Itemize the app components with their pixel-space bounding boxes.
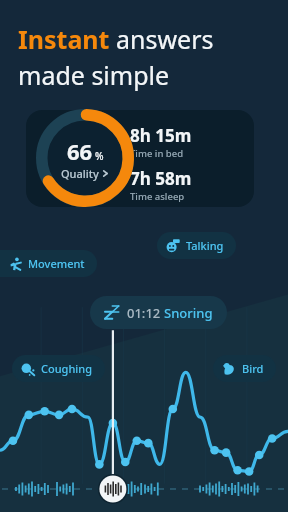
button[interactable]: Coughing (12, 355, 105, 382)
button[interactable]: Sleep quality 66 percent (33, 106, 137, 210)
staticText: Time asleep (130, 190, 185, 203)
staticText: Talking (186, 238, 224, 253)
button[interactable]: Movement (0, 250, 97, 277)
staticText: Bird (242, 361, 264, 376)
staticText: Instant (18, 22, 116, 56)
staticText: 8h 15m (130, 124, 192, 147)
staticText: Time in bed (130, 147, 184, 160)
staticText: % (95, 149, 104, 163)
staticText: Coughing (41, 361, 93, 376)
button[interactable]: Talking (157, 232, 236, 259)
button[interactable]: 01:12 (90, 296, 227, 329)
button[interactable]: 8h 15m (26, 110, 254, 207)
staticText: 7h 58m (130, 167, 192, 190)
staticText: made simple (18, 58, 170, 92)
button[interactable]: Bird (213, 355, 276, 382)
staticText: Snoring (164, 304, 213, 322)
staticText: Quality (61, 166, 99, 181)
staticText: 66 (67, 136, 93, 166)
staticText: Movement (28, 256, 85, 271)
staticText: answers (116, 22, 214, 56)
staticText: 01:12 (127, 304, 164, 322)
